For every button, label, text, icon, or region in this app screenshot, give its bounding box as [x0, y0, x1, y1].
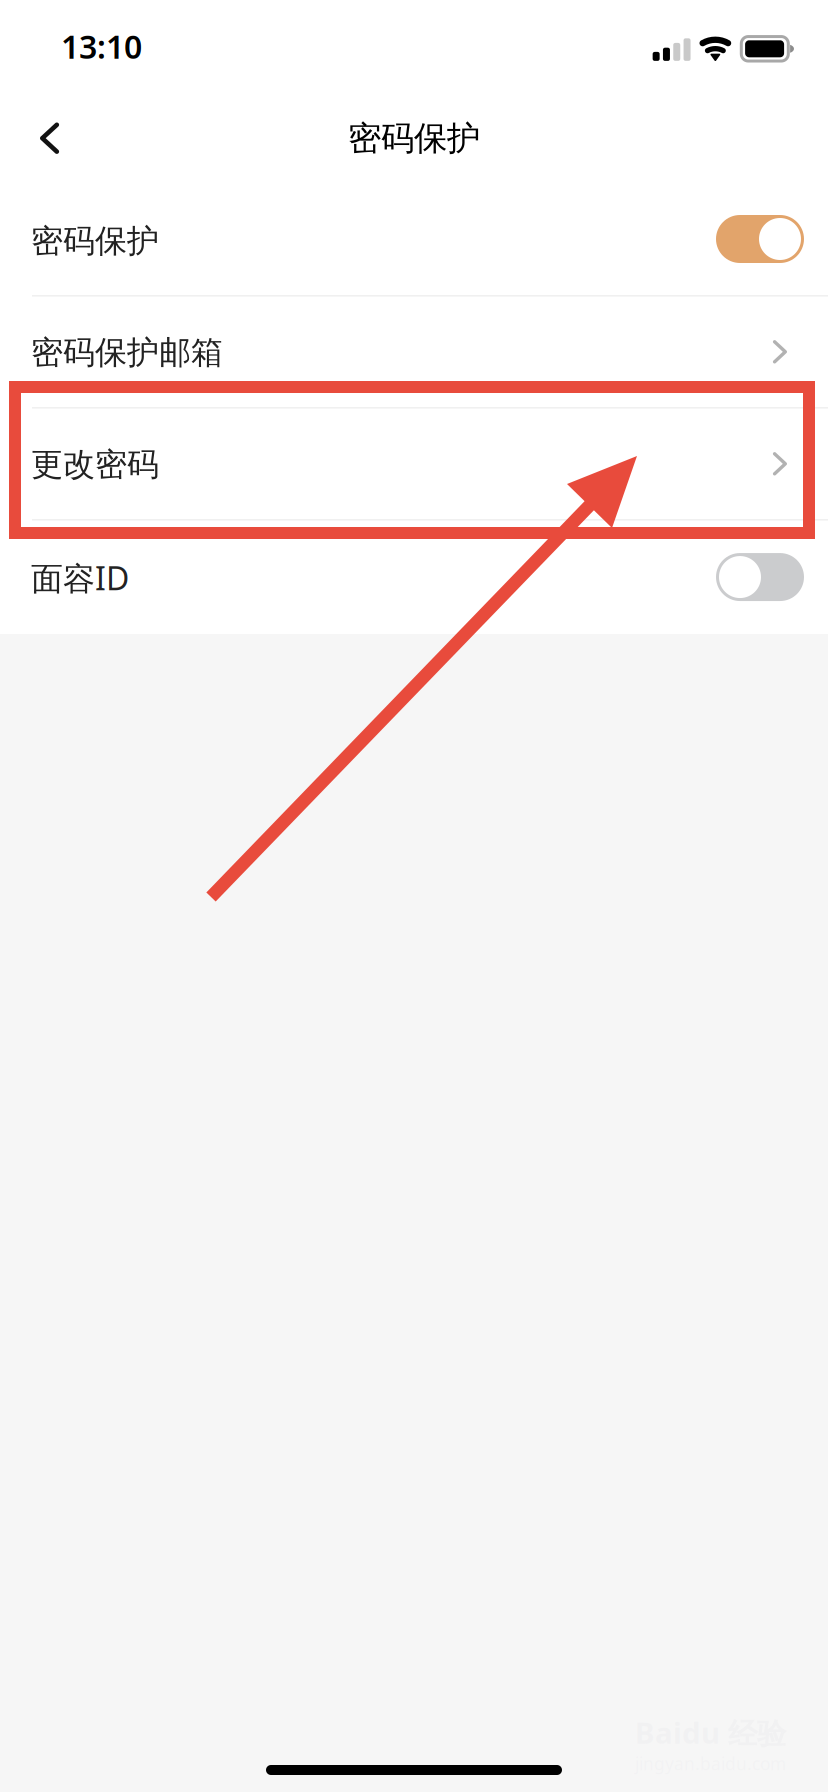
staticText: 面容ID [31, 557, 129, 599]
button[interactable]: 面容ID [0, 519, 828, 633]
button[interactable]: 更改密码 [0, 407, 828, 519]
button[interactable]: Back [38, 94, 120, 183]
staticText: 密码保护邮箱 [31, 333, 223, 372]
staticText: 更改密码 [31, 445, 159, 484]
button[interactable]: 密码保护 [0, 183, 828, 295]
staticText: 13:10 [61, 25, 142, 67]
staticText: 密码保护 [31, 221, 159, 261]
button[interactable]: 密码保护邮箱 [0, 295, 828, 407]
staticText: 密码保护 [348, 118, 480, 159]
